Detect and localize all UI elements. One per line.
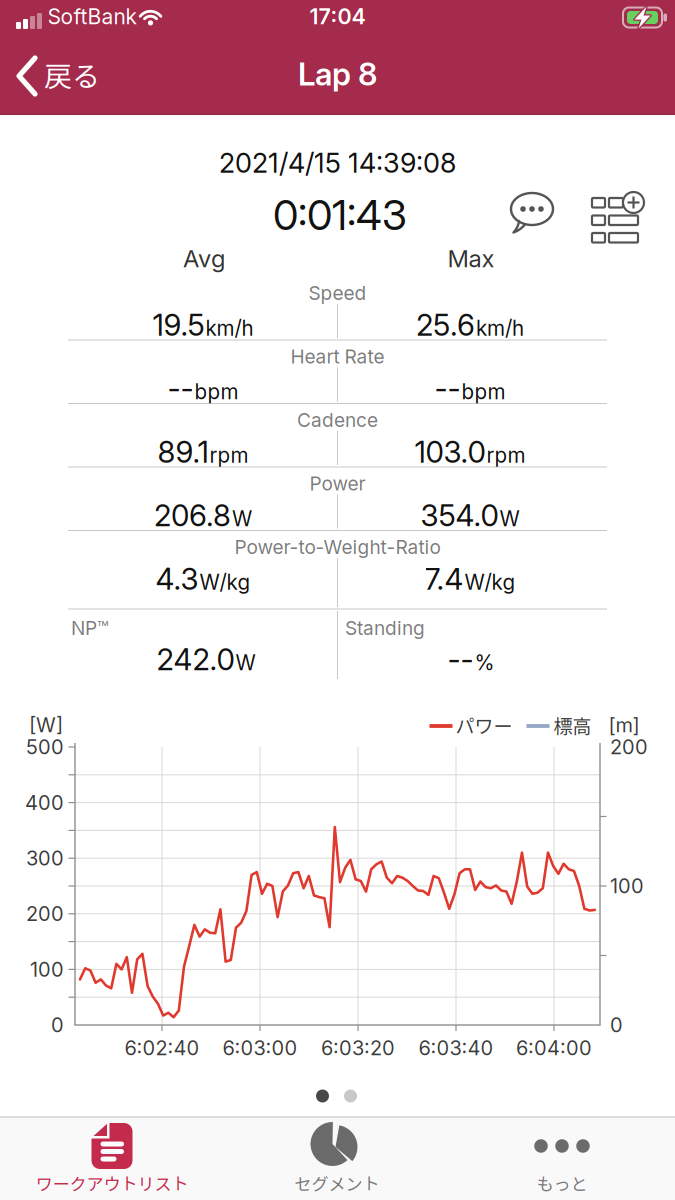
staticText: SoftBank [47,4,136,29]
button[interactable]: 戻る [0,45,110,105]
staticText: NP™ [71,616,109,640]
staticText: W [499,506,519,531]
staticText: 103.0 [414,434,485,470]
staticText: 200 [26,902,64,926]
staticText: 400 [25,790,64,815]
staticText: 200 [610,735,648,759]
staticText: 354.0 [420,498,498,533]
staticText: セグメント [294,1171,379,1195]
staticText: パワー [455,711,512,739]
staticText: 6:03:00 [222,1036,297,1060]
staticText: rpm [209,443,248,468]
staticText: Lap 8 [298,55,377,93]
staticText: 6:04:00 [516,1036,592,1060]
staticText: 19.5 [152,307,204,343]
staticText: -- [434,371,460,406]
staticText: 206.8 [154,498,231,533]
staticText: W [232,506,252,531]
staticText: W/kg [464,570,515,595]
button[interactable]: セグメント [252,1117,422,1200]
staticText: 2021/4/15 14:39:08 [219,147,456,179]
staticText: Avg [183,244,225,273]
button[interactable]: リストに追加 [591,195,643,243]
staticText: 17:04 [309,3,365,29]
staticText: km/h [205,316,253,341]
staticText: 6:02:40 [124,1036,199,1060]
staticText: 500 [26,735,64,759]
staticText: 戻る [44,54,100,95]
staticText: [m] [608,713,639,737]
staticText: W [235,650,255,675]
button[interactable]: コメント [509,192,557,238]
staticText: 89.1 [157,434,208,470]
staticText: 6:03:20 [321,1036,395,1060]
staticText: % [474,650,494,675]
staticText: Cadence [297,408,378,432]
button[interactable]: ワークアウトリスト [7,1117,217,1200]
staticText: Power-to-Weight-Ratio [234,535,440,559]
staticText: rpm [486,443,525,468]
staticText: Max [447,244,494,273]
button[interactable]: もっと [487,1117,637,1200]
staticText: bpm [461,379,505,404]
staticText: 0 [610,1013,623,1037]
staticText: Power [309,472,365,495]
staticText: もっと [536,1171,587,1195]
staticText: bpm [194,379,238,404]
staticText: 4.3 [155,561,198,597]
staticText: 100 [30,957,64,981]
staticText: 100 [610,874,644,898]
staticText: [W] [29,713,63,737]
staticText: Heart Rate [290,345,384,368]
staticText: -- [447,642,473,677]
staticText: 6:03:40 [418,1036,493,1060]
staticText: 25.6 [416,307,475,343]
staticText: 標高 [553,711,591,739]
staticText: 242.0 [156,642,234,677]
staticText: Standing [345,616,425,640]
staticText: -- [167,371,193,406]
staticText: 0:01:43 [273,190,407,240]
staticText: 300 [26,846,64,870]
staticText: Speed [308,281,366,305]
staticText: 7.4 [424,561,463,597]
staticText: 0 [51,1013,64,1037]
staticText: ワークアウトリスト [35,1171,188,1195]
staticText: km/h [476,316,524,341]
staticText: W/kg [199,570,250,595]
